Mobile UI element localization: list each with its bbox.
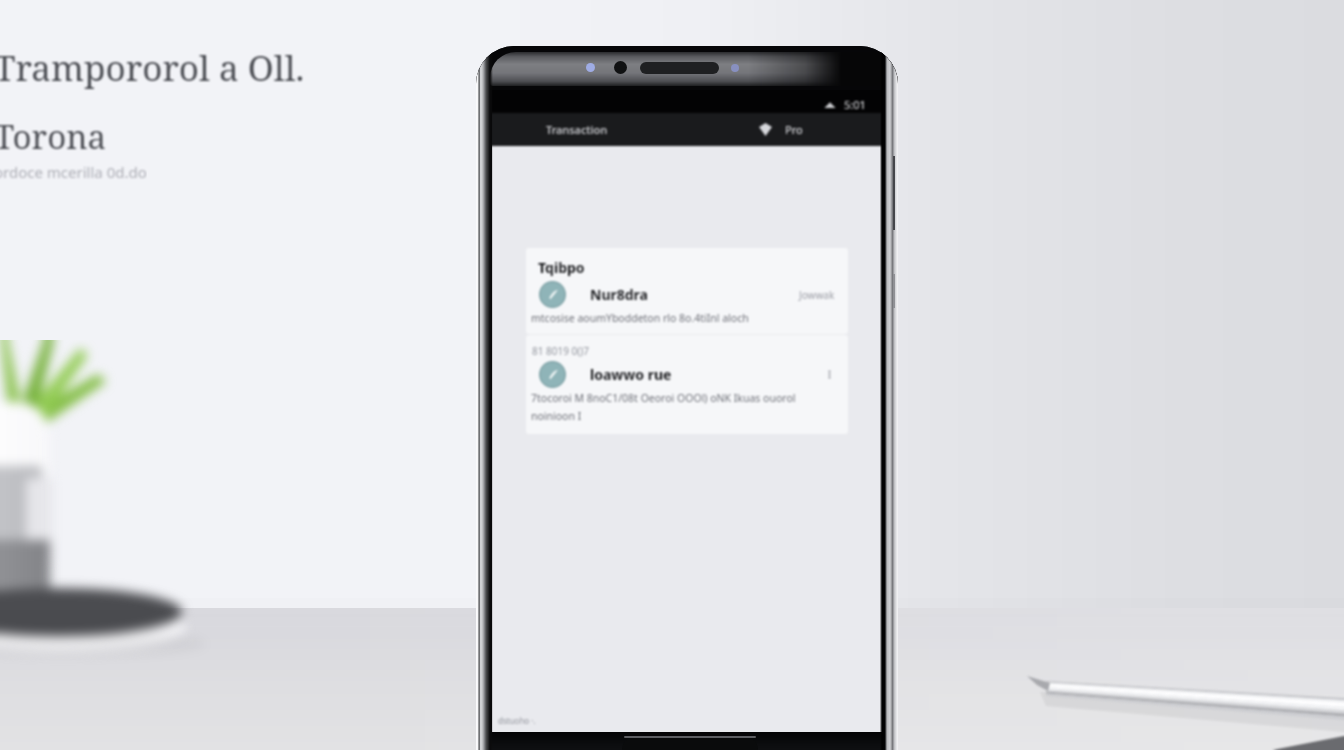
staticText: Trampororol a Oll.	[0, 44, 305, 92]
other: Pro account	[759, 123, 772, 136]
button[interactable]: Pro account	[757, 122, 805, 137]
staticText: mtcosise aoumYboddeton rlo 8o.4tiInl alo…	[531, 311, 749, 325]
button[interactable]: 81 8019 0()7	[526, 335, 848, 434]
staticText: Tqibpo	[538, 258, 585, 277]
staticText: loawwo rue	[590, 365, 672, 384]
staticText: ordoce mcerilla 0d.do	[0, 162, 147, 182]
staticText: Pro	[785, 122, 803, 137]
button[interactable]: More options	[822, 367, 837, 382]
staticText: Transaction	[546, 122, 608, 137]
button[interactable]: Home	[622, 737, 758, 750]
staticText: noinioon I	[531, 409, 582, 423]
staticText: Jowwak	[799, 288, 835, 302]
button[interactable]: Tqibpo	[526, 248, 848, 334]
staticText: 81 8019 0()7	[532, 344, 589, 358]
staticText: 5:01	[844, 97, 866, 112]
staticText: 7tocoroi M 8noC1/08t Oeoroi OOOl) oNK Ik…	[531, 391, 796, 405]
staticText: Nur8dra	[590, 285, 648, 304]
button[interactable]: Transaction	[546, 122, 608, 137]
staticText: dstuoho ·.	[498, 715, 536, 726]
staticText: Torona	[0, 114, 107, 159]
